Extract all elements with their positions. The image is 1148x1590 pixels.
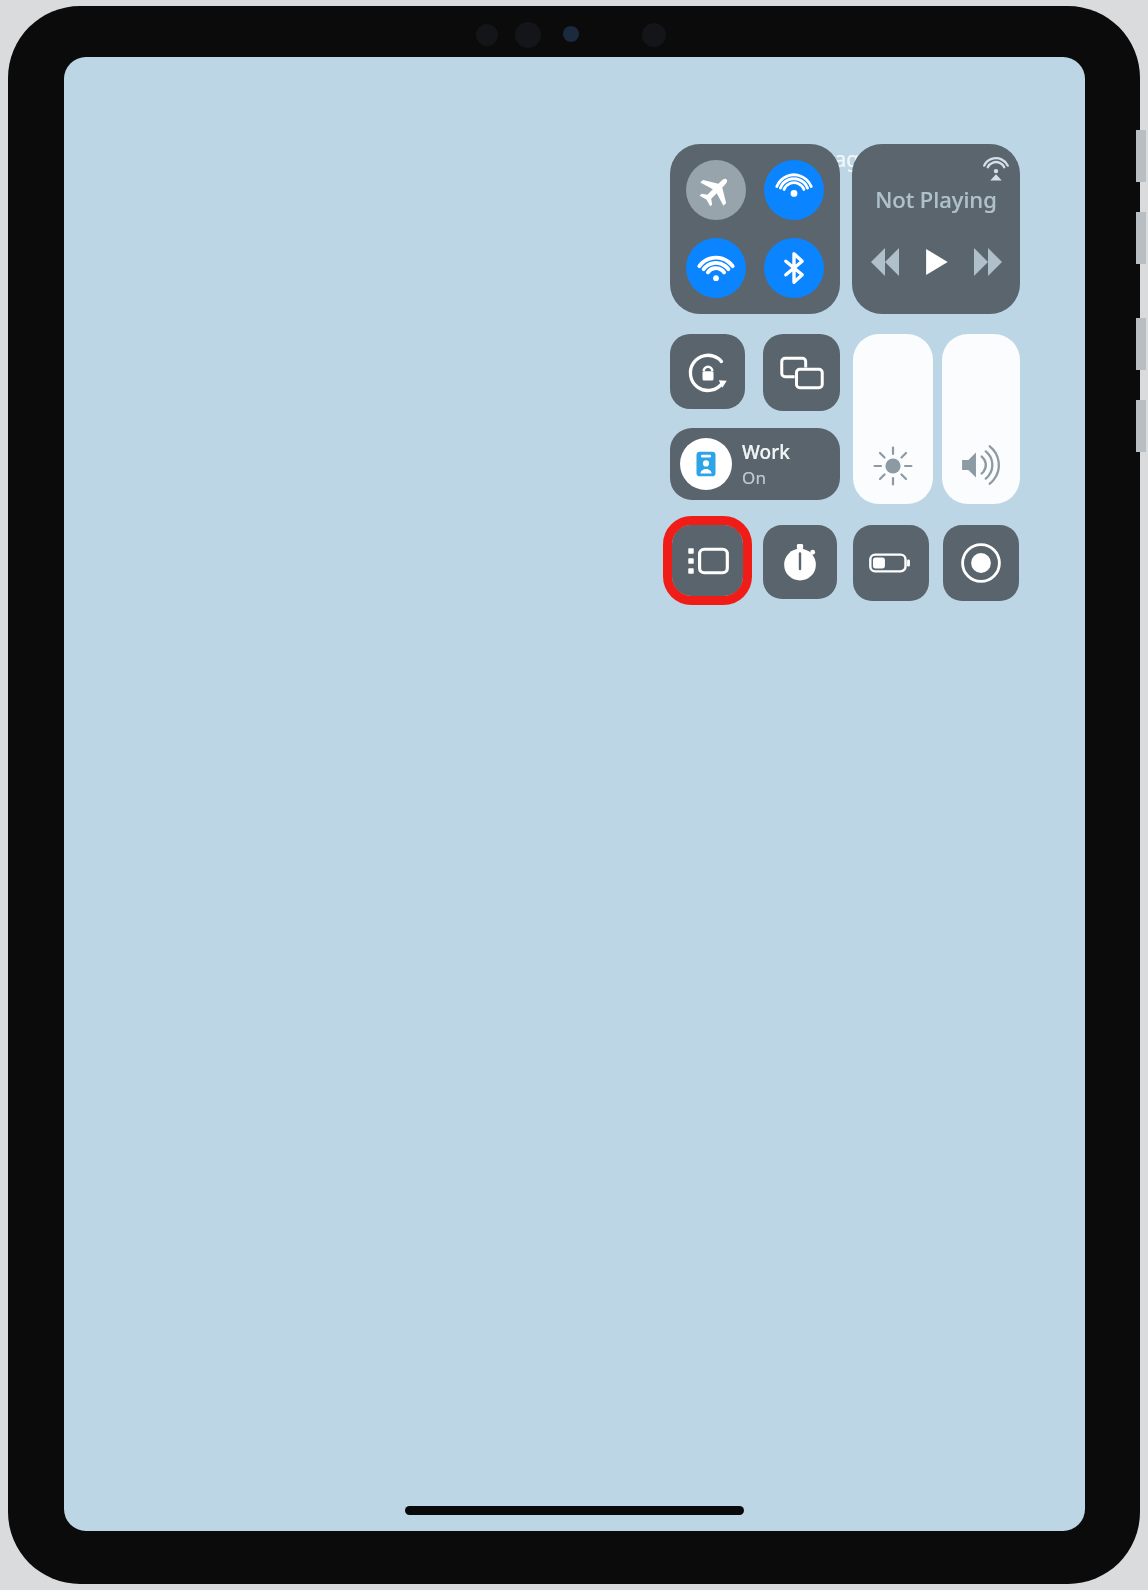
button[interactable]: Screen Recording [943,525,1019,601]
other: AirPlay [983,155,1009,181]
button[interactable]: Airplane Mode [670,144,840,314]
button[interactable]: Stage Manager [672,525,743,596]
staticText: Work [742,439,790,465]
button[interactable]: Timer [763,525,837,599]
button[interactable]: Volume [942,334,1020,504]
button[interactable]: Rotation Lock [670,334,745,409]
button[interactable]: Brightness [853,334,933,504]
button[interactable]: Screen Mirroring [763,334,840,411]
staticText: On [742,466,766,489]
button[interactable]: AirPlay [852,144,1020,314]
button[interactable]: Play [917,243,955,281]
button[interactable]: Bluetooth [764,238,824,298]
button[interactable]: Airplane Mode [686,160,746,220]
button[interactable]: Wi-Fi [686,238,746,298]
staticText: Stage Manager: Off [815,145,1008,174]
staticText: Not Playing [875,184,997,214]
button[interactable]: Low Power Mode [853,525,929,601]
button[interactable]: Work [670,428,840,500]
button[interactable]: Rewind [866,243,904,281]
button[interactable]: Fast forward [969,243,1007,281]
button[interactable]: AirDrop [764,160,824,220]
